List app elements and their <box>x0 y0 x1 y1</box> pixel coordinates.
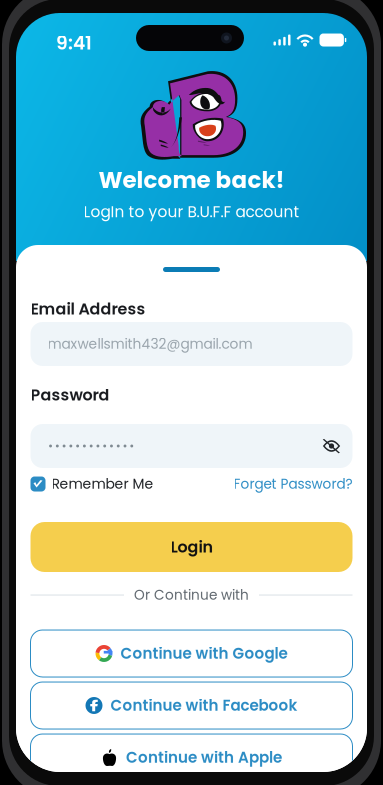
staticText: Continue with Facebook <box>110 695 297 716</box>
staticText: Continue with Google <box>120 643 287 664</box>
staticText: Password <box>30 384 109 406</box>
button[interactable]: Continue with Google <box>30 630 352 677</box>
staticText: maxwellsmith432@gmail.com <box>47 334 252 354</box>
staticText: Forget Password? <box>233 474 352 493</box>
staticText: Remember Me <box>51 474 153 494</box>
staticText: Or Continue with <box>134 585 249 604</box>
button[interactable]: Continue with Apple <box>30 734 352 781</box>
staticText: Login <box>170 536 212 558</box>
staticText: Email Address <box>30 298 145 320</box>
staticText: Continue with Apple <box>126 747 282 768</box>
staticText: LogIn to your B.U.F.F account <box>83 201 299 223</box>
button[interactable]: Show password <box>314 424 348 468</box>
button[interactable]: Remember Me <box>30 474 153 494</box>
button[interactable]: Continue with Facebook <box>30 682 352 729</box>
staticText: Welcome back! <box>98 164 284 196</box>
button[interactable]: Forget Password? <box>233 474 352 493</box>
staticText: 9:41 <box>56 30 92 56</box>
button[interactable]: Login <box>30 522 352 572</box>
